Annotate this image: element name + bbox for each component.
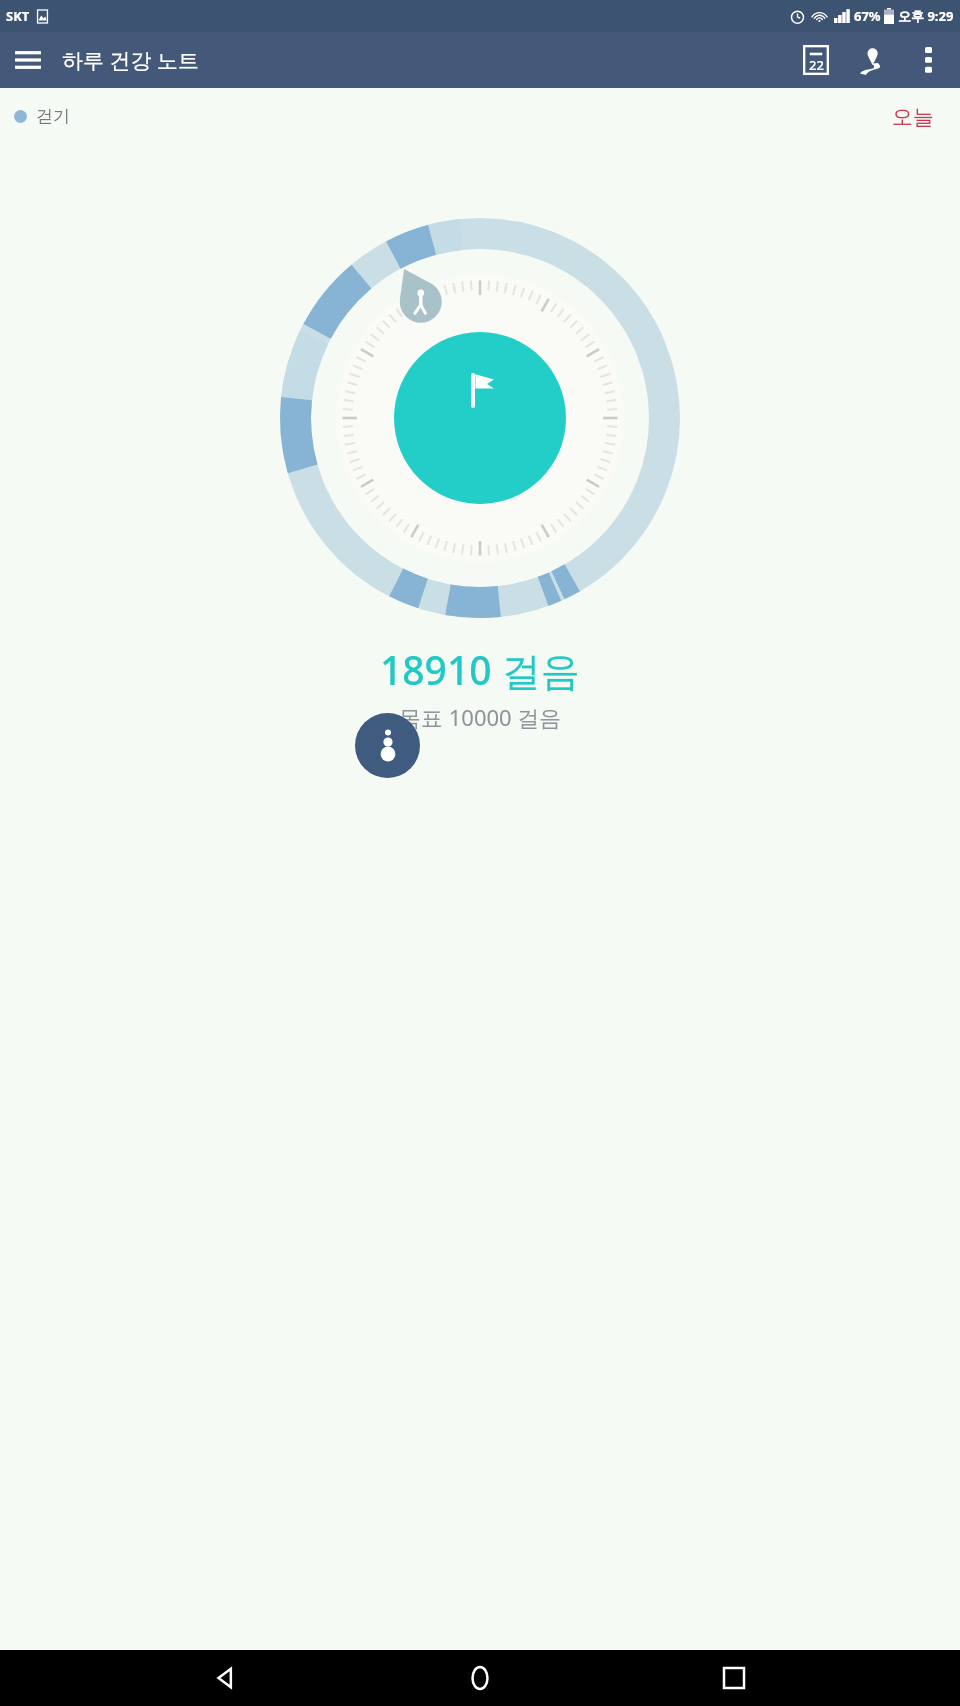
staticText: SKT: [6, 7, 30, 25]
button[interactable]: More options: [900, 32, 956, 88]
button[interactable]: Calendar: [788, 32, 844, 88]
button[interactable]: Menu: [0, 32, 56, 88]
button[interactable]: Route: [844, 32, 900, 88]
button[interactable]: Recents: [706, 1650, 762, 1706]
button[interactable]: 오늘: [884, 96, 942, 138]
staticText: 18910 걸음: [380, 643, 580, 696]
staticText: 오후 9:29: [898, 7, 954, 25]
staticText: 걷기: [36, 106, 70, 127]
staticText: 오늘: [892, 104, 934, 130]
button[interactable]: Add record: [355, 713, 420, 778]
staticText: 22: [809, 56, 824, 74]
staticText: 목표 10000 걸음: [399, 702, 562, 732]
staticText: 67%: [854, 7, 881, 25]
button[interactable]: Back: [198, 1650, 254, 1706]
button[interactable]: Home: [452, 1650, 508, 1706]
staticText: 하루 건강 노트: [62, 46, 199, 75]
